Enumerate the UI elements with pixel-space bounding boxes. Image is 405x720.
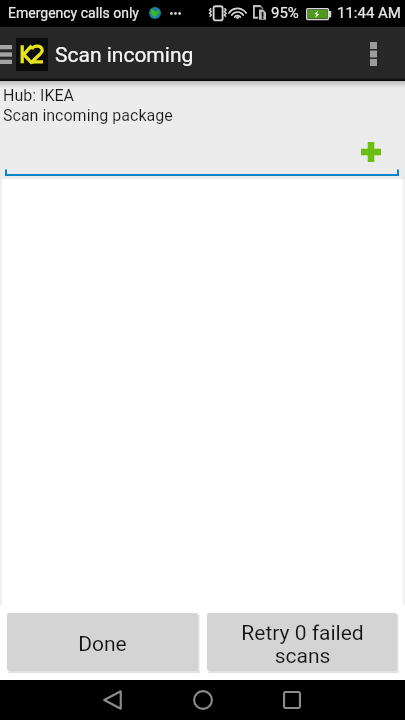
button[interactable]: Recent apps [268, 680, 316, 720]
button[interactable]: Retry 0 failed scans [207, 613, 397, 671]
button[interactable]: More options [357, 27, 391, 81]
staticText: Hub: IKEA [3, 86, 74, 105]
staticText: Scan incoming package [3, 106, 173, 125]
staticText: Done [78, 632, 127, 657]
button[interactable]: Done [7, 613, 198, 671]
staticText: 95% [271, 4, 299, 22]
button[interactable]: Open navigation drawer [0, 27, 16, 81]
staticText: Scan incoming [55, 43, 194, 68]
button[interactable]: Home [179, 680, 227, 720]
button[interactable]: Add package [353, 134, 389, 170]
button[interactable]: Back [88, 680, 136, 720]
staticText: Retry 0 failed scans [241, 621, 364, 668]
staticText: Emergency calls only [8, 5, 139, 21]
staticText: 11:44 AM [337, 4, 401, 22]
